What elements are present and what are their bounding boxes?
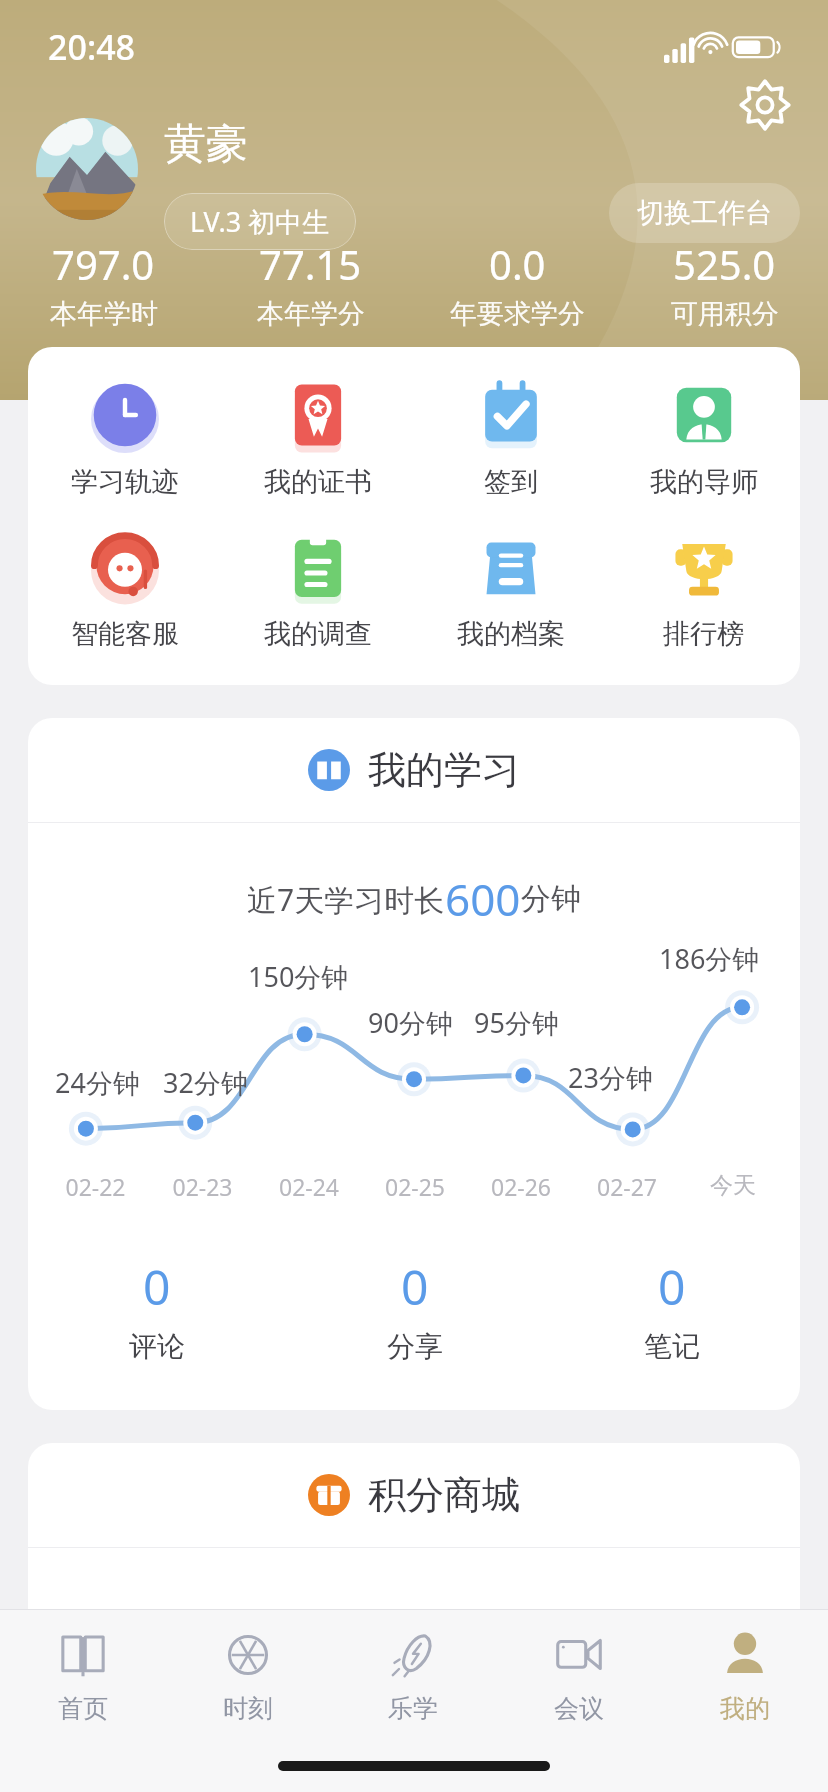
staticText: 乐学 <box>388 1693 438 1724</box>
button[interactable]: 我的档案 <box>414 533 607 651</box>
staticText: 今天 <box>680 1171 786 1200</box>
button[interactable]: 我的证书 <box>221 381 414 499</box>
button[interactable]: 我的 <box>662 1610 828 1740</box>
staticText: 首页 <box>58 1693 108 1724</box>
staticText: 77.15 <box>259 237 362 291</box>
staticText: 可用积分 <box>671 297 779 331</box>
button[interactable]: 乐学 <box>330 1610 496 1740</box>
staticText: 02-24 <box>256 1171 362 1202</box>
button[interactable]: 我的调查 <box>221 533 414 651</box>
staticText: 0 <box>143 1254 171 1319</box>
staticText: 20:48 <box>48 24 136 70</box>
staticText: 23分钟 <box>568 1059 653 1096</box>
staticText: 02-27 <box>574 1171 680 1202</box>
staticText: 95分钟 <box>474 1004 559 1041</box>
staticText: 我的学习 <box>368 746 520 794</box>
button[interactable]: 会议 <box>496 1610 662 1740</box>
button[interactable]: 切换工作台 <box>609 183 800 243</box>
staticText: 24分钟 <box>55 1064 140 1101</box>
staticText: 我的调查 <box>264 617 372 651</box>
button[interactable]: 智能客服 <box>28 533 221 651</box>
button[interactable]: 525.0 <box>621 237 828 331</box>
staticText: 02-25 <box>362 1171 468 1202</box>
staticText: 笔记 <box>644 1329 700 1364</box>
button[interactable]: 签到 <box>414 381 607 499</box>
staticText: 0 <box>658 1254 686 1319</box>
button[interactable]: 我的导师 <box>607 381 800 499</box>
button[interactable] <box>36 118 138 220</box>
button[interactable]: 0 <box>28 1254 286 1364</box>
staticText: 本年学分 <box>257 297 365 331</box>
staticText: 0 <box>401 1254 429 1319</box>
staticText: 我的档案 <box>457 617 565 651</box>
staticText: 排行榜 <box>663 617 744 651</box>
button[interactable]: 0 <box>543 1254 800 1364</box>
staticText: 797.0 <box>52 237 155 291</box>
button[interactable]: 排行榜 <box>607 533 800 651</box>
staticText: 切换工作台 <box>637 196 772 230</box>
staticText: 我的 <box>720 1693 770 1724</box>
staticText: LV.3 初中生 <box>190 203 330 240</box>
staticText: 黄豪 <box>164 118 248 171</box>
staticText: 我的证书 <box>264 465 372 499</box>
staticText: 评论 <box>129 1329 185 1364</box>
staticText: 分享 <box>387 1329 443 1364</box>
staticText: 年要求学分 <box>450 297 585 331</box>
staticText: 0.0 <box>489 237 546 291</box>
staticText: 近7天学习时长 <box>247 879 445 920</box>
staticText: 签到 <box>484 465 538 499</box>
button[interactable]: 77.15 <box>207 237 414 331</box>
staticText: 本年学时 <box>50 297 158 331</box>
staticText: 智能客服 <box>71 617 179 651</box>
button[interactable]: 首页 <box>0 1610 165 1740</box>
button[interactable]: Settings <box>738 78 792 132</box>
button[interactable]: 0.0 <box>414 237 621 331</box>
button[interactable]: 我的学习 <box>28 718 800 822</box>
button[interactable]: 学习轨迹 <box>28 381 221 499</box>
button[interactable]: 时刻 <box>165 1610 330 1740</box>
staticText: 90分钟 <box>368 1004 453 1041</box>
staticText: 32分钟 <box>163 1064 248 1101</box>
staticText: 02-23 <box>149 1171 256 1202</box>
staticText: 150分钟 <box>248 958 349 995</box>
button[interactable]: 0 <box>286 1254 543 1364</box>
staticText: 02-26 <box>468 1171 574 1202</box>
staticText: 186分钟 <box>659 940 760 977</box>
staticText: 我的导师 <box>650 465 758 499</box>
staticText: 分钟 <box>521 880 581 918</box>
staticText: 525.0 <box>673 237 776 291</box>
staticText: 学习轨迹 <box>71 465 179 499</box>
staticText: 02-22 <box>42 1171 149 1202</box>
button[interactable]: 积分商城 <box>28 1443 800 1547</box>
staticText: 时刻 <box>223 1693 273 1724</box>
staticText: 600 <box>445 869 521 929</box>
staticText: 会议 <box>554 1693 604 1724</box>
button[interactable]: LV.3 初中生 <box>164 193 356 250</box>
staticText: 积分商城 <box>368 1471 520 1519</box>
button[interactable]: 797.0 <box>0 237 207 331</box>
